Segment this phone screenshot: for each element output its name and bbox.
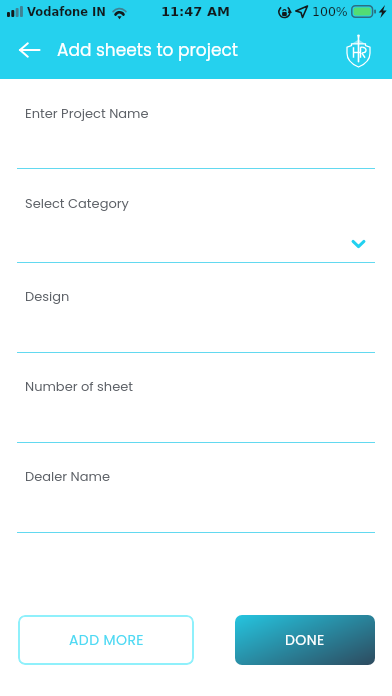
button[interactable]: DONE xyxy=(235,615,375,665)
staticText: Vodafone IN xyxy=(27,5,106,18)
staticText: Select Category xyxy=(25,194,129,212)
button[interactable]: Open category dropdown xyxy=(346,232,370,256)
button[interactable]: ADD MORE xyxy=(18,615,194,665)
staticText: ADD MORE xyxy=(69,630,144,650)
staticText: 100% xyxy=(312,4,348,19)
staticText: Enter Project Name xyxy=(25,104,149,122)
staticText: DONE xyxy=(285,630,325,650)
button[interactable]: Back xyxy=(7,28,51,72)
staticText: Number of sheet xyxy=(25,377,134,395)
button[interactable]: App logo xyxy=(337,29,379,71)
staticText: Design xyxy=(25,287,70,305)
staticText: Dealer Name xyxy=(25,467,110,485)
staticText: 11:47 AM xyxy=(161,4,230,19)
staticText: Add sheets to project xyxy=(57,38,238,62)
